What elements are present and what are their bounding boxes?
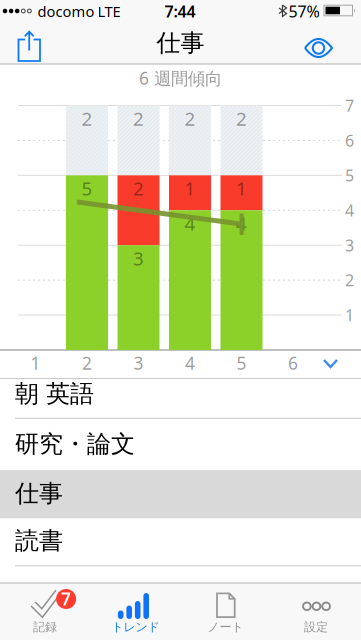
staticText: 1 xyxy=(236,176,247,201)
staticText: 7 xyxy=(345,95,354,116)
staticText: 1 xyxy=(30,351,40,374)
staticText: 3 xyxy=(133,351,143,374)
staticText: 6 週間傾向 xyxy=(139,66,222,89)
staticText: 2 xyxy=(345,269,354,291)
button[interactable]: ノート xyxy=(181,583,271,640)
staticText: 4 xyxy=(236,211,247,236)
staticText: 2 xyxy=(81,106,92,131)
button[interactable]: View options xyxy=(296,35,341,61)
staticText: 6 xyxy=(288,351,298,374)
staticText: 3 xyxy=(133,246,144,271)
staticText: 2 xyxy=(133,106,144,131)
staticText: 3 xyxy=(345,235,354,256)
staticText: 1 xyxy=(345,304,354,326)
staticText: 2 xyxy=(236,106,247,131)
button[interactable]: Collapse chart xyxy=(324,360,337,367)
staticText: 4 xyxy=(345,200,354,221)
staticText: docomo xyxy=(37,2,94,21)
staticText: トレンド xyxy=(111,620,159,634)
button[interactable]: 読書 xyxy=(0,517,361,565)
staticText: 6 xyxy=(345,130,354,151)
button[interactable]: 仕事 xyxy=(0,470,361,518)
staticText: 研究・論文 xyxy=(15,429,135,459)
staticText: 1 xyxy=(184,176,195,201)
button[interactable]: 設定 xyxy=(271,583,361,640)
staticText: 5 xyxy=(236,351,246,374)
staticText: 7 xyxy=(61,587,71,610)
staticText: 5 xyxy=(81,176,92,201)
staticText: 朝 英語 xyxy=(15,379,94,408)
button[interactable]: Share xyxy=(14,29,44,63)
staticText: 設定 xyxy=(304,620,328,634)
staticText: LTE xyxy=(97,2,120,21)
staticText: 仕事 xyxy=(15,479,63,508)
button[interactable]: 朝 英語 xyxy=(0,378,361,418)
button[interactable]: 7 xyxy=(0,583,90,640)
staticText: 2 xyxy=(82,351,92,374)
staticText: 2 xyxy=(184,106,195,131)
staticText: 7:44 xyxy=(164,1,195,22)
staticText: 4 xyxy=(185,351,195,374)
button[interactable]: 研究・論文 xyxy=(0,418,361,469)
staticText: 記録 xyxy=(33,620,57,634)
staticText: 4 xyxy=(184,211,195,236)
staticText: 5 xyxy=(345,165,354,186)
staticText: 仕事 xyxy=(156,28,204,58)
staticText: 2 xyxy=(133,176,144,201)
staticText: 読書 xyxy=(15,526,63,556)
staticText: ノート xyxy=(208,620,244,634)
button[interactable]: トレンド xyxy=(90,583,180,640)
staticText: 57% xyxy=(288,1,319,22)
